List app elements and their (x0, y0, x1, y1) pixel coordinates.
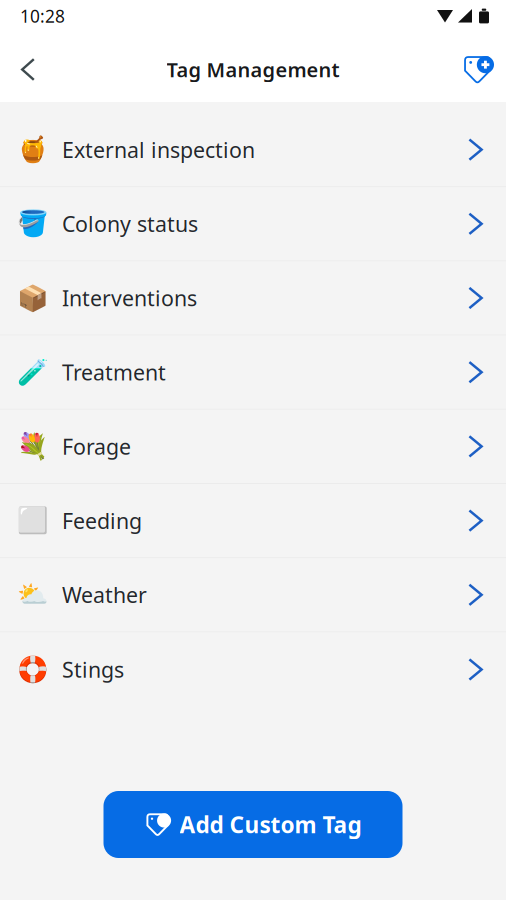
staticText: 10:28 (20, 4, 65, 27)
button[interactable]: 🪣 (0, 187, 506, 261)
staticText: 🧪 (17, 358, 49, 387)
button[interactable]: ⬜ (0, 484, 506, 558)
staticText: Interventions (62, 284, 197, 312)
staticText: 🛟 (17, 655, 49, 684)
button[interactable]: 🧪 (0, 336, 506, 410)
button[interactable]: 🛟 (0, 632, 506, 707)
button[interactable]: ⛅ (0, 558, 506, 632)
staticText: 💐 (17, 432, 49, 461)
button[interactable]: Add tag (456, 45, 500, 93)
staticText: 📦 (17, 283, 49, 312)
staticText: ⬜ (17, 506, 49, 535)
staticText: External inspection (62, 135, 255, 164)
staticText: Add Custom Tag (179, 809, 361, 839)
staticText: 🍯 (17, 135, 49, 164)
staticText: Stings (62, 655, 124, 684)
staticText: Feeding (62, 506, 142, 535)
button[interactable]: Back (6, 45, 50, 93)
staticText: Treatment (62, 358, 166, 386)
staticText: ⛅ (17, 580, 49, 609)
staticText: Weather (62, 581, 147, 609)
staticText: Forage (62, 432, 131, 460)
button[interactable]: 🍯 (0, 113, 506, 187)
button[interactable]: Add Custom Tag (103, 791, 402, 858)
staticText: Tag Management (166, 56, 339, 83)
staticText: Colony status (62, 210, 198, 238)
staticText: 🪣 (17, 209, 49, 238)
button[interactable]: 📦 (0, 261, 506, 336)
button[interactable]: 💐 (0, 410, 506, 484)
